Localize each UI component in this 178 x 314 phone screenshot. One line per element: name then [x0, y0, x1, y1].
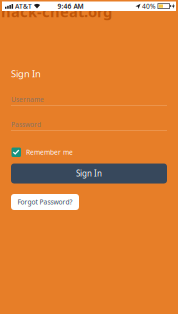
button[interactable]: Remember me [11, 147, 73, 157]
staticText: Sign In [76, 168, 102, 179]
button[interactable]: Forgot Password? [11, 194, 79, 210]
button[interactable]: Sign In [11, 163, 167, 183]
staticText: Remember me [26, 148, 73, 157]
button[interactable]: Username [11, 95, 167, 107]
staticText: Sign In [11, 67, 41, 80]
staticText: Forgot Password? [17, 198, 72, 206]
button[interactable]: Password [11, 120, 167, 132]
staticText: hack-cheat.org [1, 2, 112, 21]
staticText: 9:46 AM [57, 2, 83, 11]
staticText: 40% [142, 2, 156, 11]
staticText: Password [11, 120, 41, 129]
staticText: Username [11, 95, 44, 104]
staticText: AT&T [15, 2, 32, 11]
